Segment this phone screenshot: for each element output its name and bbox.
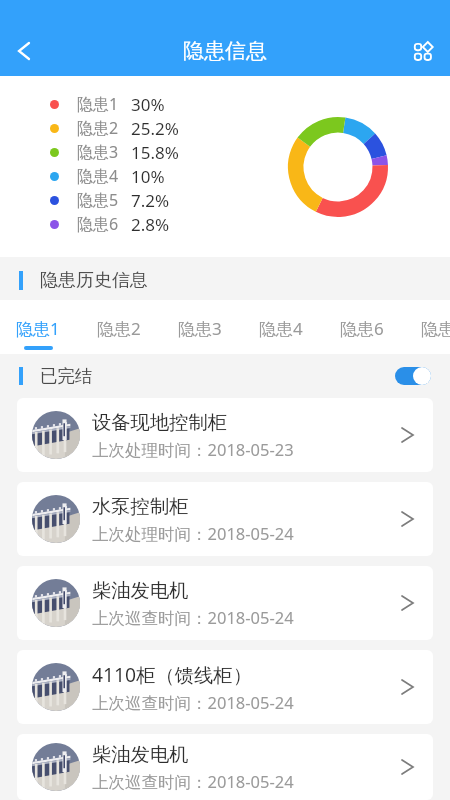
staticText: 隐患6 [77,213,119,235]
staticText: 水泵控制柜 [92,494,189,518]
staticText: 2.8% [131,213,170,236]
staticText: 柴油发电机 [92,742,189,766]
staticText: 已完结 [40,365,93,387]
staticText: 隐患1 [16,317,60,340]
button[interactable]: 设备现地控制柜 [17,398,433,472]
button[interactable]: 隐患3 [162,300,243,354]
staticText: 隐患4 [259,317,303,340]
staticText: 柴油发电机 [92,578,189,602]
button[interactable]: 水泵控制柜 [17,482,433,556]
button[interactable]: 4110柜（馈线柜） [17,650,433,724]
staticText: 隐患2 [77,117,119,139]
staticText: 隐患2 [97,317,141,340]
staticText: 上次巡查时间：2018-05-24 [92,691,294,714]
staticText: 隐患5 [77,189,119,211]
staticText: 上次巡查时间：2018-05-24 [92,770,294,793]
staticText: 上次巡查时间：2018-05-24 [92,606,294,629]
staticText: 隐患6 [340,317,384,340]
staticText: 7.2% [131,189,170,212]
staticText: 上次处理时间：2018-05-23 [92,438,294,461]
button[interactable]: Back [0,27,48,75]
staticText: 10% [131,165,165,188]
button[interactable]: 隐患6 [324,300,405,354]
staticText: 设备现地控制柜 [92,410,228,434]
button[interactable]: Completed toggle [395,367,431,385]
button[interactable]: Grid menu [401,30,443,72]
staticText: 隐患信息 [183,38,267,64]
staticText: 4110柜（馈线柜） [92,661,252,687]
button[interactable]: 柴油发电机 [17,566,433,640]
staticText: 30% [131,93,165,116]
staticText: 隐患3 [77,141,119,163]
staticText: 隐患3 [178,317,222,340]
staticText: 隐患历史信息 [40,269,148,292]
staticText: 25.2% [131,117,179,140]
button[interactable]: 隐患5 [405,300,450,354]
staticText: 15.8% [131,141,179,164]
button[interactable]: 隐患2 [81,300,162,354]
staticText: 隐患4 [77,165,119,187]
button[interactable]: 柴油发电机 [17,734,433,800]
staticText: 隐患1 [77,93,119,115]
button[interactable]: 隐患1 [0,300,81,354]
staticText: 上次处理时间：2018-05-24 [92,522,294,545]
staticText: 隐患5 [421,317,450,340]
button[interactable]: 隐患4 [243,300,324,354]
